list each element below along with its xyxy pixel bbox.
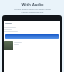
staticText: With Audio — [21, 2, 44, 7]
button[interactable] — [5, 34, 59, 39]
staticText: Lorem ipsum dolor sit amet conse ctetur … — [14, 8, 51, 14]
